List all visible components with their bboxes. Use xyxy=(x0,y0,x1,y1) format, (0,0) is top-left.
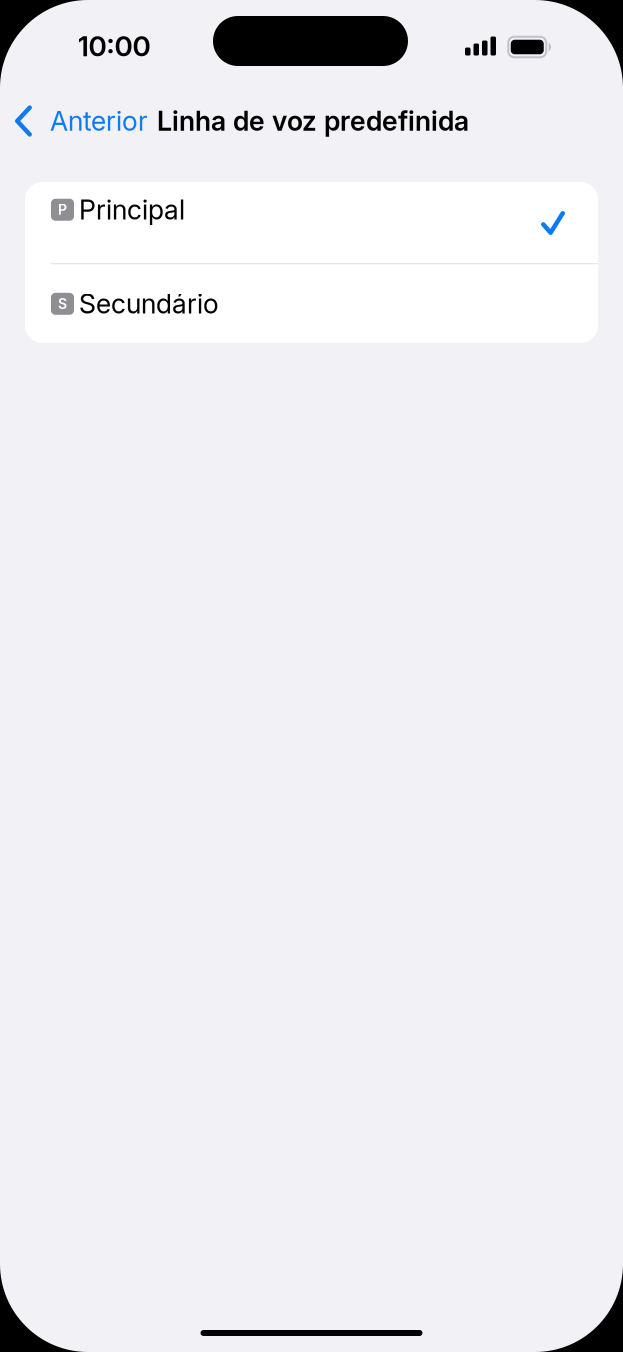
staticText: 10:00 xyxy=(77,29,150,63)
staticText: Linha de voz predefinida xyxy=(157,105,469,137)
button[interactable]: Secundário xyxy=(25,264,598,343)
button[interactable]: Principal xyxy=(25,182,598,263)
staticText: P xyxy=(58,201,67,218)
button[interactable]: Anterior xyxy=(0,93,157,149)
staticText: Secundário xyxy=(79,288,219,320)
staticText: Principal xyxy=(79,194,185,226)
staticText: Anterior xyxy=(50,105,148,137)
staticText: S xyxy=(58,295,67,312)
